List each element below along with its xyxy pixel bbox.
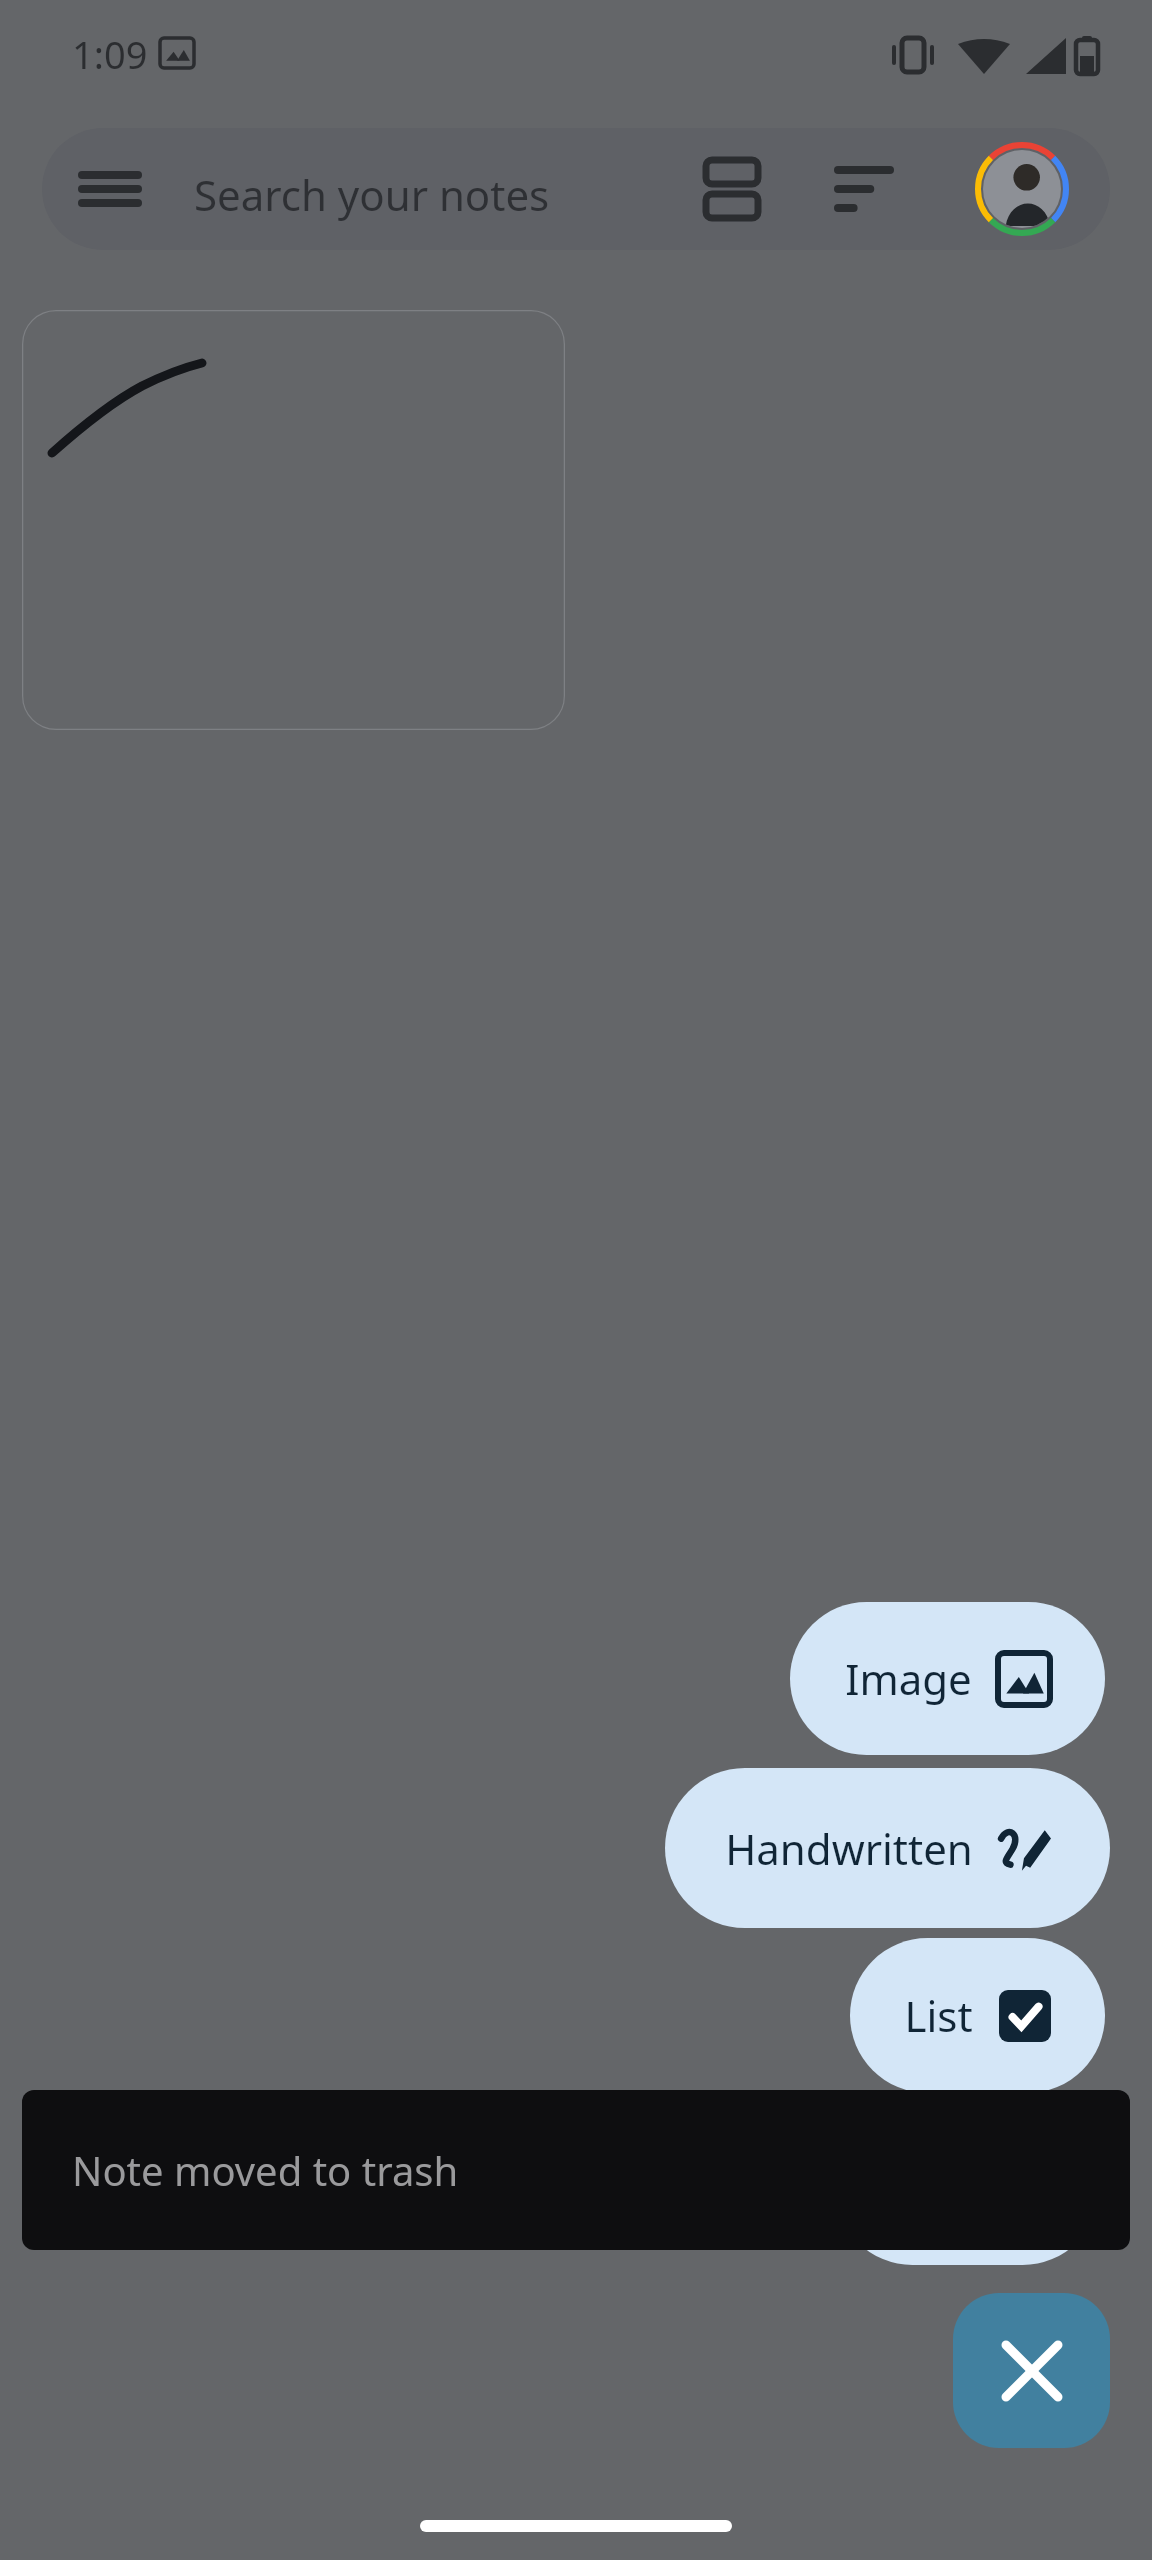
staticText: 1:09 xyxy=(72,28,148,80)
button[interactable] xyxy=(22,310,565,730)
button[interactable]: Image xyxy=(790,1602,1105,1755)
button[interactable]: Open navigation drawer xyxy=(60,139,160,239)
staticText: Image xyxy=(845,1650,972,1707)
button[interactable]: Close menu xyxy=(953,2293,1110,2448)
button[interactable]: List xyxy=(850,1938,1105,2093)
button[interactable]: Note moved to trash xyxy=(22,2090,1130,2250)
staticText: Handwritten xyxy=(725,1820,973,1877)
button[interactable]: Change view xyxy=(682,139,782,239)
button[interactable]: Handwritten xyxy=(665,1768,1110,1928)
staticText: List xyxy=(904,1987,973,2044)
staticText: Note moved to trash xyxy=(72,2143,459,2197)
button[interactable]: Search your notes xyxy=(194,166,550,223)
button[interactable]: Text xyxy=(835,2110,1100,2265)
button[interactable]: Account xyxy=(972,139,1072,239)
button[interactable]: Sort notes xyxy=(814,139,914,239)
